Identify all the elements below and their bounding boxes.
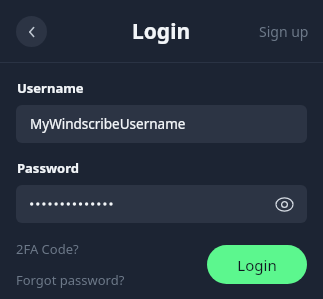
staticText: 2FA Code? [16,240,79,258]
staticText: Login [132,17,191,46]
button[interactable]: 2FA Code? [16,237,79,261]
button[interactable]: Sign up [245,14,323,49]
staticText: Username [17,79,84,97]
staticText: Login [237,255,277,275]
button[interactable]: Back [16,16,47,47]
staticText: Forgot password? [16,271,125,289]
button[interactable]: Show password [16,185,307,223]
staticText: Sign up [259,22,309,41]
staticText: MyWindscribeUsername [30,115,186,133]
staticText: Password [17,159,79,177]
button[interactable]: MyWindscribeUsername [16,105,307,143]
button[interactable]: Show password [271,191,297,217]
button[interactable]: Login [207,245,307,284]
button[interactable]: Forgot password? [16,268,125,292]
